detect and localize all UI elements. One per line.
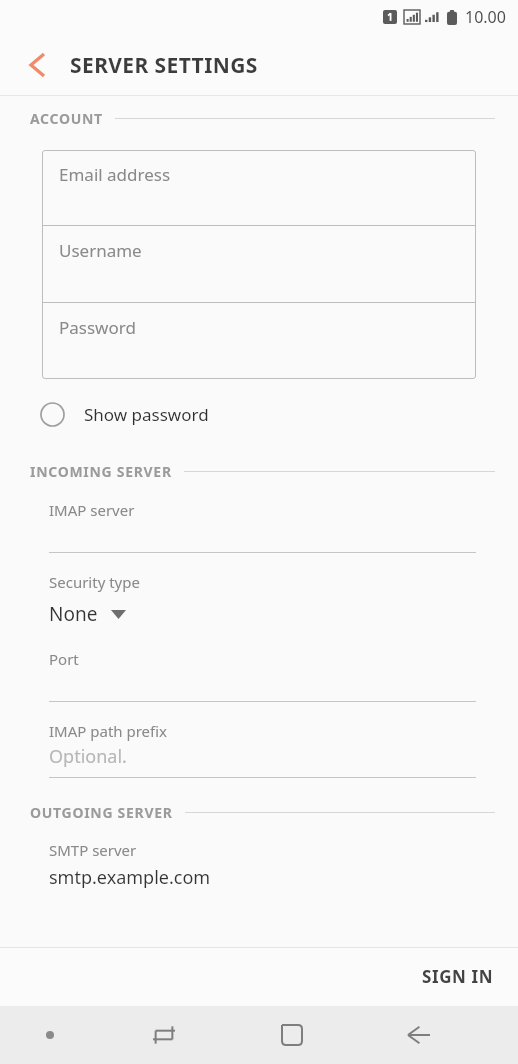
button[interactable]: Home <box>228 1006 355 1064</box>
staticText: ACCOUNT <box>30 109 103 128</box>
staticText: 10.00 <box>465 6 506 28</box>
button[interactable]: Security type <box>0 572 518 627</box>
staticText: Password <box>59 316 136 339</box>
staticText: Username <box>59 239 142 262</box>
staticText: SERVER SETTINGS <box>70 51 258 80</box>
button[interactable]: IMAP path prefix <box>0 721 518 778</box>
staticText: Optional. <box>49 744 127 769</box>
staticText: IMAP server <box>49 500 135 520</box>
staticText: None <box>49 601 98 627</box>
staticText: OUTGOING SERVER <box>30 803 173 822</box>
staticText: Show password <box>84 403 209 426</box>
button[interactable]: Recents <box>100 1006 228 1064</box>
staticText: SIGN IN <box>422 965 494 988</box>
button[interactable]: Show password <box>0 393 518 435</box>
button[interactable]: Email address <box>42 150 476 225</box>
button[interactable]: IMAP server <box>0 500 518 553</box>
button[interactable]: Back <box>16 44 58 86</box>
staticText: smtp.example.com <box>49 865 211 890</box>
staticText: IMAP path prefix <box>49 721 168 741</box>
button[interactable]: Password <box>42 303 476 379</box>
button[interactable]: Username <box>42 226 476 302</box>
staticText: Security type <box>49 572 140 592</box>
button[interactable]: SIGN IN <box>398 952 518 1001</box>
staticText: Email address <box>59 163 171 186</box>
button[interactable]: Back <box>355 1006 482 1064</box>
button[interactable]: Port <box>0 649 518 702</box>
staticText: Port <box>49 649 79 669</box>
staticText: INCOMING SERVER <box>30 462 172 481</box>
staticText: SMTP server <box>49 840 137 860</box>
